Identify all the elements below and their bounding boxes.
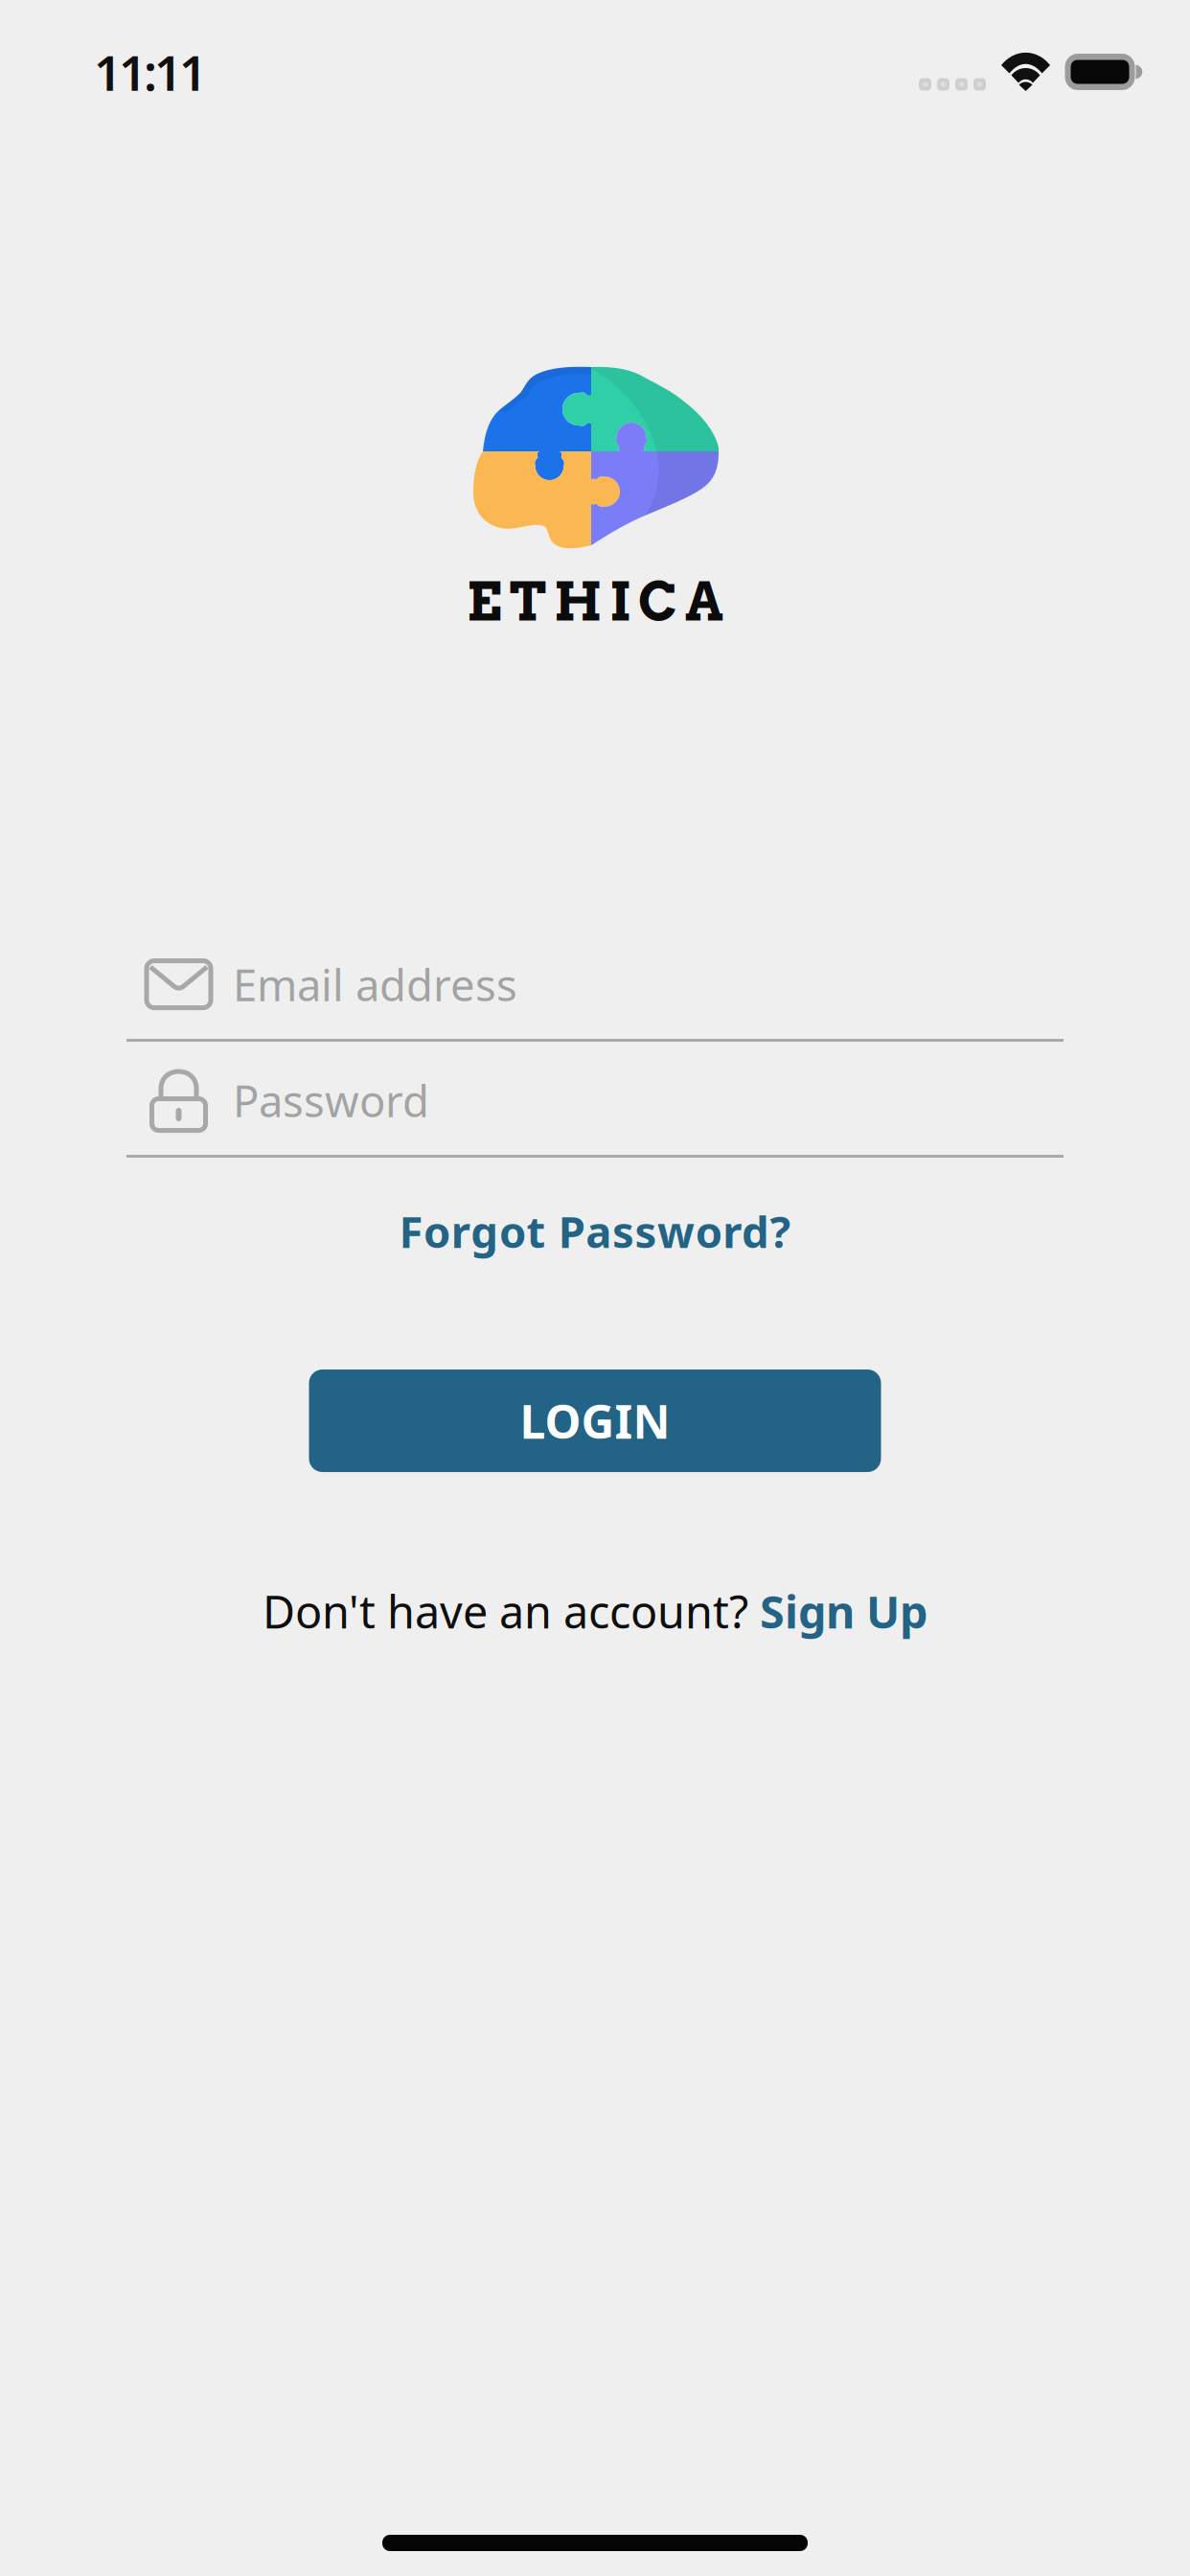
staticText: Forgot Password? (399, 1201, 791, 1261)
button[interactable]: Don't have an account? (263, 1581, 927, 1641)
staticText: Password (233, 1071, 429, 1130)
button[interactable]: Forgot Password? (384, 1202, 806, 1260)
staticText: Email address (233, 955, 517, 1014)
staticText: 11:11 (94, 39, 207, 105)
staticText: Sign Up (760, 1581, 927, 1642)
button[interactable]: LOGIN (309, 1369, 881, 1472)
staticText: ETHICA (467, 570, 723, 633)
staticText: LOGIN (520, 1389, 670, 1452)
staticText: Don't have an account? (263, 1581, 760, 1642)
